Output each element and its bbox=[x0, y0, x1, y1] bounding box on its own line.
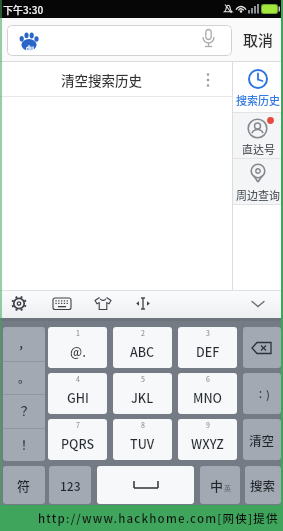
staticText: 3 bbox=[206, 328, 210, 338]
button[interactable]: 搜索历史 bbox=[233, 62, 283, 112]
staticText: 1 bbox=[76, 328, 80, 338]
button[interactable]: 5 bbox=[113, 373, 172, 414]
button[interactable]: 4 bbox=[48, 373, 107, 414]
staticText: 下午3:30 bbox=[3, 2, 44, 16]
button[interactable]: 2 bbox=[113, 327, 172, 368]
staticText: 。 bbox=[18, 369, 31, 386]
staticText: du bbox=[26, 43, 34, 52]
staticText: 9 bbox=[206, 420, 210, 430]
button[interactable]: ：) bbox=[243, 373, 281, 414]
staticText: MNO bbox=[193, 388, 222, 406]
button[interactable]: 123 bbox=[49, 466, 91, 504]
button[interactable]: 。 bbox=[3, 361, 45, 394]
button[interactable]: 3 bbox=[178, 327, 237, 368]
button[interactable] bbox=[243, 327, 281, 368]
button[interactable]: 1 bbox=[48, 327, 107, 368]
button[interactable] bbox=[132, 293, 154, 315]
button[interactable]: ， bbox=[3, 327, 45, 360]
staticText: 123 bbox=[60, 477, 81, 494]
staticText: TUV bbox=[130, 434, 155, 452]
staticText: 中 bbox=[210, 476, 224, 495]
staticText: ABC bbox=[130, 342, 155, 360]
staticText: 周边查询 bbox=[236, 187, 280, 203]
button[interactable]: 清空搜索历史 bbox=[0, 62, 232, 97]
button[interactable]: 7 bbox=[48, 419, 107, 460]
staticText: 直达号 bbox=[242, 141, 275, 157]
staticText: ， bbox=[18, 335, 31, 352]
button[interactable]: 清空 bbox=[243, 419, 281, 460]
staticText: 7 bbox=[76, 420, 80, 430]
button[interactable]: 8 bbox=[113, 419, 172, 460]
staticText: 2 bbox=[141, 328, 145, 338]
staticText: @. bbox=[70, 342, 86, 360]
staticText: 搜索 bbox=[250, 476, 276, 494]
button[interactable] bbox=[246, 293, 270, 317]
staticText: PQRS bbox=[61, 434, 95, 452]
staticText: 4 bbox=[76, 374, 80, 384]
staticText: 清空搜索历史 bbox=[61, 70, 142, 90]
staticText: GHI bbox=[67, 388, 89, 406]
staticText: DEF bbox=[196, 342, 220, 360]
staticText: ：) bbox=[255, 386, 270, 402]
button[interactable]: 符 bbox=[3, 466, 45, 504]
staticText: 取消 bbox=[243, 29, 274, 51]
staticText: 英 bbox=[224, 483, 231, 493]
staticText: 搜索历史 bbox=[236, 92, 280, 108]
staticText: JKL bbox=[131, 388, 154, 406]
button[interactable]: 取消 bbox=[233, 18, 283, 61]
button[interactable]: ？ bbox=[3, 394, 45, 427]
staticText: 8 bbox=[141, 420, 145, 430]
button[interactable]: 6 bbox=[178, 373, 237, 414]
staticText: 符 bbox=[17, 476, 31, 495]
staticText: 清空 bbox=[249, 431, 275, 449]
button[interactable]: 搜索 bbox=[245, 466, 281, 504]
button[interactable] bbox=[92, 293, 114, 315]
staticText: 5 bbox=[141, 374, 145, 384]
staticText: WXYZ bbox=[191, 434, 224, 452]
staticText: http://www.hackhome.com[网侠]提供 bbox=[38, 510, 279, 527]
button[interactable]: 9 bbox=[178, 419, 237, 460]
button[interactable]: 中 bbox=[200, 466, 240, 504]
staticText: ！ bbox=[18, 436, 31, 453]
staticText: 6 bbox=[206, 374, 210, 384]
button[interactable]: 周边查询 bbox=[233, 159, 283, 204]
button[interactable] bbox=[97, 466, 194, 504]
staticText: ？ bbox=[18, 402, 31, 419]
button[interactable]: ！ bbox=[3, 428, 45, 461]
button[interactable]: 直达号 bbox=[233, 113, 283, 158]
button[interactable] bbox=[51, 293, 73, 315]
button[interactable] bbox=[8, 293, 30, 315]
